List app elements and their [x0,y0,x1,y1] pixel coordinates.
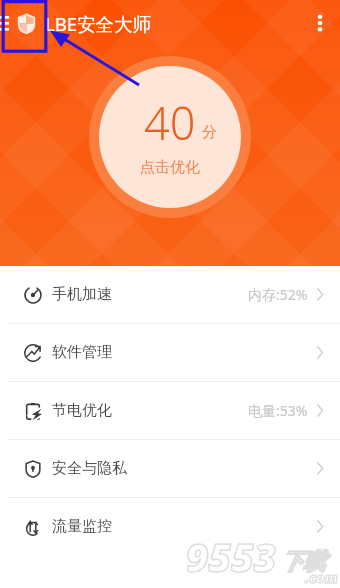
button[interactable]: Menu [0,0,14,46]
staticText: 手机加速 [52,285,112,304]
staticText: 节电优化 [52,401,112,420]
staticText: 分 [202,123,217,142]
button[interactable]: 节电优化 [0,382,340,439]
staticText: 40 [144,92,196,153]
staticText: 9553 [186,530,277,583]
staticText: 软件管理 [52,343,112,362]
staticText: .com [305,568,338,587]
button[interactable]: More options [300,0,340,46]
button[interactable]: 软件管理 [0,324,340,381]
staticText: 内存:52% [248,285,308,304]
staticText: 安全与隐私 [52,459,127,478]
staticText: 下载 [281,548,325,576]
button[interactable]: 安全与隐私 [0,440,340,497]
staticText: LBE安全大师 [45,11,152,36]
staticText: 流量监控 [52,517,112,536]
staticText: 点击优化 [140,158,200,177]
button[interactable]: 流量监控 [0,498,340,555]
button[interactable]: App logo [14,0,38,46]
staticText: 电量:53% [248,401,308,420]
button[interactable]: 手机加速 [0,266,340,323]
